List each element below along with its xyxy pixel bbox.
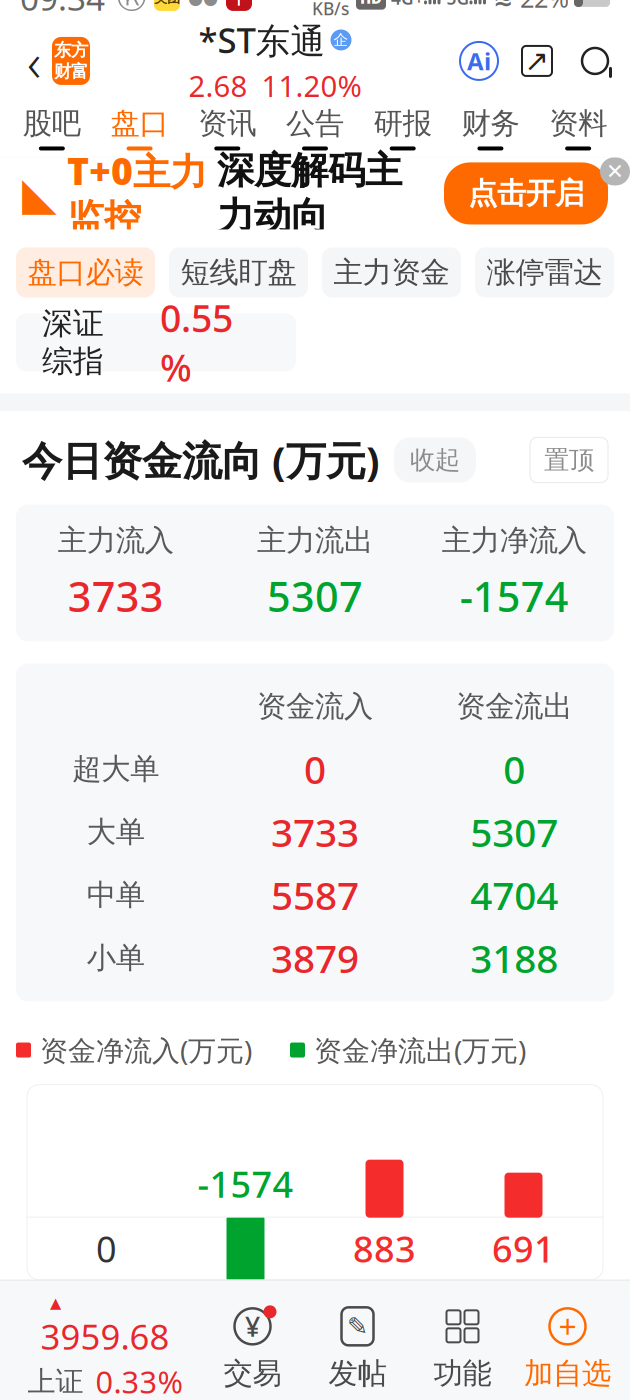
staticText: 资金流入 [257, 688, 373, 724]
staticText: Ⓚ [117, 0, 146, 16]
staticText: Ai [467, 45, 491, 77]
staticText: 11.20% [261, 66, 361, 105]
staticText: 美团 [154, 0, 180, 6]
staticText: 收起 [410, 444, 460, 475]
staticText: ↗ [524, 44, 549, 78]
staticText: 发帖 [328, 1355, 386, 1391]
button[interactable]: ¥ [200, 1305, 305, 1391]
staticText: -1574 [197, 1160, 293, 1208]
staticText: 22% [520, 0, 569, 15]
button[interactable]: 返回 [16, 33, 52, 89]
staticText: ‹ [27, 25, 41, 96]
staticText: 公告 [286, 105, 344, 141]
button[interactable]: 短线盯盘 [169, 247, 308, 297]
staticText: 深度解码主力动向 [217, 148, 402, 239]
staticText: ▲ [50, 1295, 61, 1311]
button[interactable]: 资讯 [183, 99, 271, 157]
staticText: KB/s [312, 0, 349, 20]
staticText: ●● [188, 0, 218, 8]
button[interactable]: AI 助手 [460, 42, 498, 80]
staticText: 中单 [87, 877, 145, 913]
button[interactable]: 主力资金 [322, 247, 461, 297]
staticText: 小单 [87, 940, 145, 976]
staticText: 超大单 [72, 751, 159, 787]
staticText: 加自选 [524, 1355, 611, 1391]
button[interactable]: 资料 [534, 99, 622, 157]
button[interactable]: 搜索 [576, 42, 614, 80]
button[interactable]: ◣ [0, 157, 630, 229]
staticText: 2.68 [188, 66, 247, 105]
button[interactable]: 上证指数 [10, 1295, 200, 1400]
staticText: 财富 [54, 61, 88, 82]
button[interactable]: 盘口必读 [16, 247, 155, 297]
button[interactable]: 分享 [520, 44, 554, 78]
staticText: 资金净流出(万元) [314, 1031, 526, 1069]
staticText: 0 [96, 1225, 117, 1273]
button[interactable]: 财务 [447, 99, 534, 157]
staticText: 短线盯盘 [180, 254, 296, 290]
staticText: 0.55% [160, 293, 233, 392]
button[interactable]: 公告 [271, 99, 359, 157]
button[interactable]: 涨停雷达 [475, 247, 614, 297]
button[interactable]: + [515, 1305, 620, 1391]
staticText: 交易 [223, 1355, 281, 1391]
staticText: 大单 [87, 814, 145, 850]
staticText: 3188 [470, 932, 558, 984]
staticText: 企 [333, 31, 348, 49]
staticText: 09:34 [20, 0, 105, 20]
button[interactable]: 盘口 [96, 99, 183, 157]
staticText: 股吧 [23, 105, 81, 141]
staticText: 4704 [470, 869, 558, 921]
staticText: T+0主力监控 [67, 146, 207, 241]
staticText: 置顶 [544, 444, 594, 475]
staticText: 5307 [267, 569, 363, 623]
staticText: 3879 [271, 932, 359, 984]
staticText: 东方 [54, 40, 88, 61]
button[interactable]: ✎ [305, 1305, 410, 1391]
staticText: 资金净流入(万元) [40, 1031, 252, 1069]
staticText: 点击开启 [468, 175, 584, 211]
staticText: ✎ [347, 1312, 368, 1341]
staticText: 691 [492, 1225, 555, 1273]
staticText: ◣ [22, 168, 57, 219]
button[interactable]: 深证综指 [16, 313, 296, 371]
staticText: -1574 [460, 569, 569, 623]
button[interactable]: 置顶 [530, 437, 608, 482]
staticText: 资料 [549, 105, 607, 141]
staticText: + [558, 1305, 576, 1348]
staticText: 深证综指 [42, 305, 104, 380]
staticText: 3733 [68, 569, 164, 623]
staticText: 主力流出 [257, 523, 373, 559]
staticText: 0.33% [95, 1361, 182, 1400]
staticText: 财务 [461, 105, 519, 141]
button[interactable]: 收起 [394, 437, 476, 482]
staticText: *ST东通 [198, 17, 325, 63]
staticText: 主力资金 [333, 254, 449, 290]
button[interactable]: 关闭广告 [600, 157, 630, 185]
staticText: HD [360, 0, 382, 8]
staticText: 主力净流入 [442, 523, 587, 559]
staticText: 0 [304, 743, 326, 795]
staticText: ✕ [606, 159, 624, 183]
staticText: 0 [503, 743, 525, 795]
staticText: 上证 [27, 1364, 83, 1399]
staticText: 盘口 [111, 105, 169, 141]
staticText: 5307 [470, 806, 558, 858]
staticText: 盘口必读 [27, 254, 143, 290]
button[interactable]: 研报 [359, 99, 447, 157]
staticText: 5G [446, 0, 469, 9]
staticText: 今日资金流向 (万元) [22, 433, 380, 486]
button[interactable]: 功能 [410, 1305, 515, 1391]
staticText: 5587 [271, 869, 359, 921]
staticText: ¥ [245, 1309, 260, 1344]
staticText: 中 [230, 0, 247, 9]
staticText: 4G+ [391, 0, 424, 9]
staticText: 主力流入 [58, 523, 174, 559]
button[interactable]: 东方财富 [52, 37, 90, 85]
staticText: 3733 [271, 806, 359, 858]
staticText: 3959.68 [40, 1313, 169, 1359]
staticText: 功能 [433, 1355, 491, 1391]
button[interactable]: 股吧 [8, 99, 96, 157]
staticText: 研报 [374, 105, 432, 141]
staticText: 涨停雷达 [486, 254, 602, 290]
